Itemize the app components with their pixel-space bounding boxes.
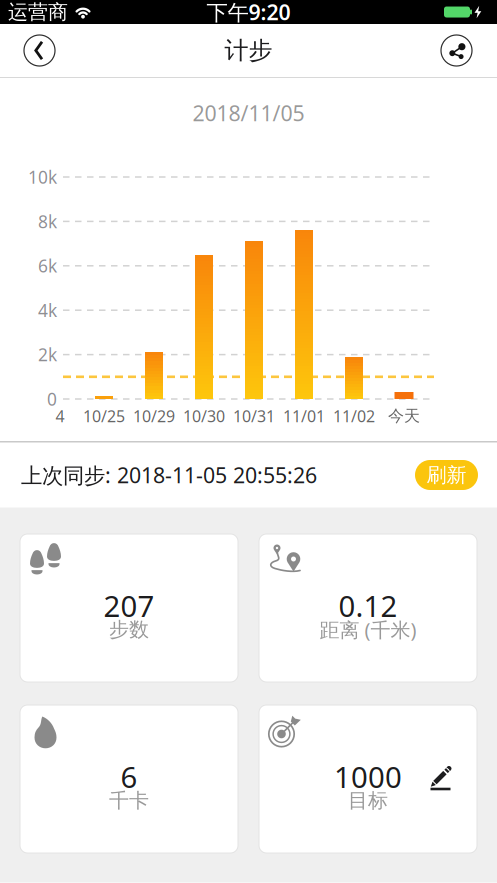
staticText: 2k <box>38 343 57 366</box>
button[interactable] <box>441 35 472 66</box>
staticText: 距离 (千米) <box>319 616 416 643</box>
staticText: 1000 <box>334 757 402 796</box>
staticText: 0 <box>47 387 57 410</box>
staticText: 刷新 <box>426 463 466 487</box>
staticText: 运营商 <box>8 0 68 24</box>
staticText: 11/02 <box>333 405 375 427</box>
staticText: 207 <box>103 586 154 625</box>
staticText: 下午9:20 <box>206 0 290 26</box>
staticText: 6k <box>38 254 57 277</box>
staticText: 目标 <box>348 788 388 813</box>
staticText: 10/25 <box>83 405 125 427</box>
staticText: 11/01 <box>283 405 325 427</box>
staticText: 计步 <box>224 36 272 65</box>
staticText: 10/30 <box>183 405 225 427</box>
staticText: 10k <box>28 165 57 188</box>
button[interactable]: 刷新 <box>415 460 478 490</box>
staticText: 8k <box>38 210 57 233</box>
staticText: 4 <box>55 405 64 427</box>
staticText: 10/29 <box>133 405 175 427</box>
staticText: 10/31 <box>233 405 275 427</box>
staticText: 今天 <box>388 406 420 426</box>
staticText: 6 <box>120 757 137 796</box>
staticText: 千卡 <box>109 788 149 813</box>
staticText: 4k <box>38 299 57 322</box>
staticText: 2018/11/05 <box>192 99 304 127</box>
button[interactable] <box>24 35 55 66</box>
button[interactable] <box>428 764 452 790</box>
staticText: 0.12 <box>338 586 397 625</box>
staticText: 上次同步: 2018-11-05 20:55:26 <box>21 461 317 489</box>
staticText: 步数 <box>109 617 149 642</box>
